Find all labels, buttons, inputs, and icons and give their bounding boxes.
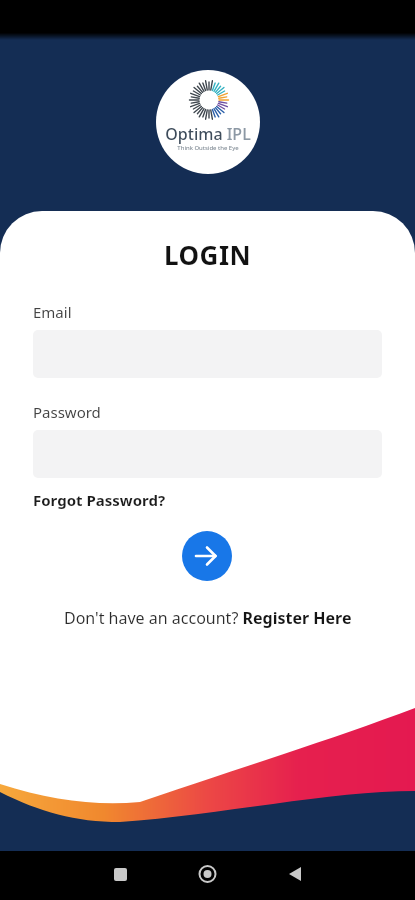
button[interactable]	[182, 531, 232, 581]
staticText: LOGIN	[164, 237, 252, 272]
staticText: Optima IPL	[165, 123, 251, 145]
button[interactable]	[275, 861, 315, 889]
staticText: Think Outside the Eye	[177, 144, 239, 152]
button[interactable]: Forgot Password?	[33, 490, 166, 510]
button[interactable]	[100, 861, 140, 889]
button[interactable]	[187, 861, 227, 889]
button[interactable]: Don't have an account? Register Here	[64, 607, 352, 629]
staticText: Password	[33, 402, 101, 422]
staticText: Email	[33, 302, 72, 322]
